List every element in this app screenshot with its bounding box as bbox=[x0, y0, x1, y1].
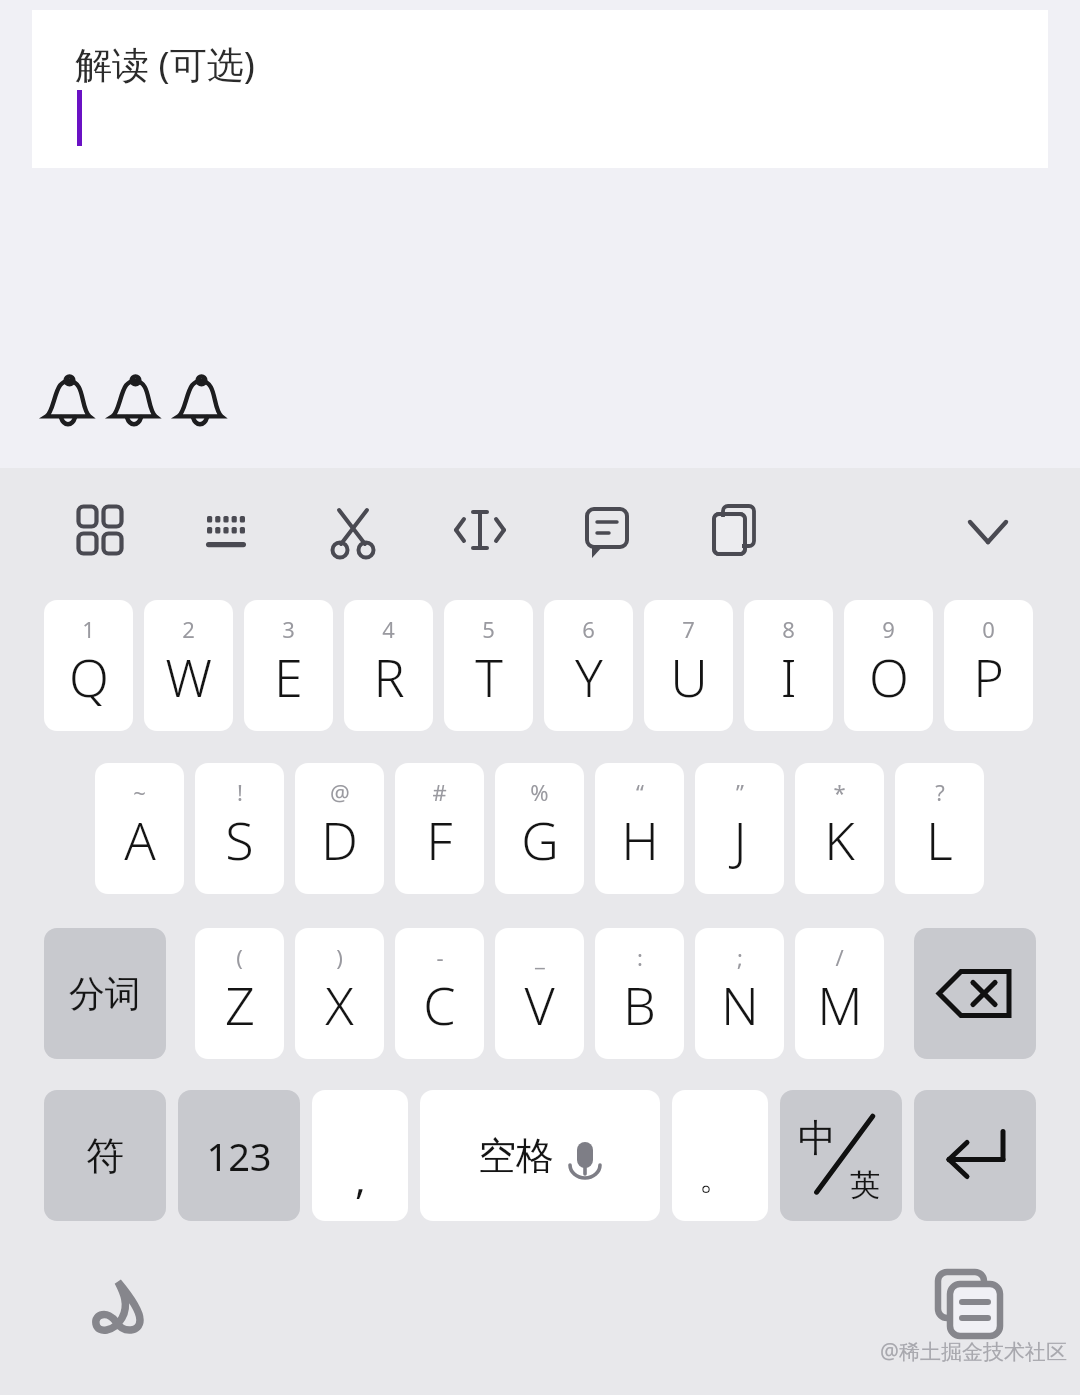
button[interactable]: % bbox=[495, 763, 584, 894]
button[interactable]: # bbox=[395, 763, 484, 894]
button[interactable]: Move cursor bbox=[442, 492, 518, 568]
staticText: 0 bbox=[982, 614, 995, 644]
staticText: ! bbox=[237, 777, 243, 807]
staticText: 4 bbox=[382, 614, 395, 644]
button[interactable]: 6 bbox=[544, 600, 633, 731]
button[interactable]: Hide keyboard bbox=[950, 492, 1026, 568]
button[interactable]: , bbox=[312, 1090, 408, 1221]
staticText: L bbox=[926, 804, 953, 875]
staticText: P bbox=[973, 641, 1004, 712]
button[interactable]: 4 bbox=[344, 600, 433, 731]
staticText: ( bbox=[236, 942, 243, 972]
staticText: 5 bbox=[482, 614, 495, 644]
button[interactable]: 0 bbox=[944, 600, 1033, 731]
staticText: G bbox=[521, 804, 559, 875]
staticText: B bbox=[623, 969, 656, 1040]
staticText: ~ bbox=[133, 777, 146, 807]
button[interactable]: 9 bbox=[844, 600, 933, 731]
button[interactable]: 符 bbox=[44, 1090, 166, 1221]
staticText: ? bbox=[935, 777, 945, 807]
staticText: 123 bbox=[206, 1130, 272, 1182]
staticText: @ bbox=[330, 777, 350, 807]
button[interactable]: ( bbox=[195, 928, 284, 1059]
staticText: / bbox=[835, 942, 844, 972]
staticText: _ bbox=[535, 942, 545, 972]
button[interactable]: 2 bbox=[144, 600, 233, 731]
staticText: S bbox=[225, 804, 254, 875]
button[interactable]: 3 bbox=[244, 600, 333, 731]
staticText: Z bbox=[225, 969, 255, 1040]
button[interactable]: ~ bbox=[95, 763, 184, 894]
staticText: , bbox=[355, 1151, 366, 1205]
button[interactable]: 8 bbox=[744, 600, 833, 731]
staticText: @稀土掘金技术社区 bbox=[880, 1337, 1067, 1366]
staticText: O bbox=[869, 641, 909, 712]
button[interactable]: Phrases bbox=[569, 492, 645, 568]
staticText: W bbox=[165, 641, 212, 712]
button[interactable]: 。 bbox=[672, 1090, 768, 1221]
staticText: 符 bbox=[86, 1132, 124, 1180]
staticText: - bbox=[436, 942, 444, 972]
staticText: 3 bbox=[282, 614, 295, 644]
button[interactable]: 123 bbox=[178, 1090, 300, 1221]
staticText: V bbox=[524, 969, 555, 1040]
staticText: N bbox=[721, 969, 759, 1040]
staticText: 分词 bbox=[69, 971, 141, 1016]
staticText: E bbox=[274, 641, 303, 712]
staticText: 1 bbox=[82, 614, 95, 644]
staticText: 6 bbox=[582, 614, 595, 644]
button[interactable]: Language bbox=[696, 492, 772, 568]
button[interactable]: ) bbox=[295, 928, 384, 1059]
staticText: H bbox=[621, 804, 659, 875]
button[interactable]: Enter bbox=[914, 1090, 1036, 1221]
staticText: M bbox=[817, 969, 863, 1040]
staticText: T bbox=[475, 641, 503, 712]
button[interactable]: IME settings bbox=[70, 1258, 166, 1354]
staticText: “ bbox=[636, 777, 644, 807]
button[interactable]: 5 bbox=[444, 600, 533, 731]
button[interactable]: 1 bbox=[44, 600, 133, 731]
button[interactable]: 解读 (可选) bbox=[32, 10, 1048, 168]
button[interactable]: Panel bbox=[62, 492, 138, 568]
button[interactable]: ” bbox=[695, 763, 784, 894]
staticText: 2 bbox=[182, 614, 195, 644]
button[interactable]: 分词 bbox=[44, 928, 166, 1059]
button[interactable]: ! bbox=[195, 763, 284, 894]
staticText: 7 bbox=[682, 614, 695, 644]
button[interactable]: - bbox=[395, 928, 484, 1059]
staticText: F bbox=[426, 804, 453, 875]
staticText: C bbox=[423, 969, 456, 1040]
staticText: D bbox=[321, 804, 358, 875]
staticText: K bbox=[824, 804, 855, 875]
staticText: A bbox=[124, 804, 156, 875]
staticText: 9 bbox=[882, 614, 895, 644]
button[interactable]: Cut bbox=[315, 492, 391, 568]
staticText: ” bbox=[736, 777, 744, 807]
button[interactable]: Backspace bbox=[914, 928, 1036, 1059]
button[interactable]: “ bbox=[595, 763, 684, 894]
button[interactable]: Keyboard layout bbox=[188, 492, 264, 568]
staticText: Q bbox=[69, 641, 109, 712]
button[interactable]: 空格 bbox=[420, 1090, 660, 1221]
button[interactable]: : bbox=[595, 928, 684, 1059]
button[interactable]: ? bbox=[895, 763, 984, 894]
button[interactable]: Clipboard bbox=[920, 1258, 1016, 1354]
button[interactable]: * bbox=[795, 763, 884, 894]
staticText: ; bbox=[737, 942, 743, 972]
button[interactable]: / bbox=[795, 928, 884, 1059]
button[interactable]: @ bbox=[295, 763, 384, 894]
button[interactable]: _ bbox=[495, 928, 584, 1059]
staticText: # bbox=[432, 777, 447, 807]
staticText: 。 bbox=[699, 1156, 733, 1199]
staticText: 解读 (可选) bbox=[75, 38, 255, 89]
button[interactable]: ; bbox=[695, 928, 784, 1059]
button[interactable]: 7 bbox=[644, 600, 733, 731]
staticText: R bbox=[373, 641, 405, 712]
staticText: 中 bbox=[798, 1114, 836, 1162]
staticText: 8 bbox=[782, 614, 795, 644]
staticText: J bbox=[733, 804, 747, 875]
button[interactable]: Chinese English toggle bbox=[780, 1090, 902, 1221]
staticText: I bbox=[780, 641, 797, 712]
staticText: X bbox=[325, 969, 354, 1040]
staticText: : bbox=[637, 942, 643, 972]
